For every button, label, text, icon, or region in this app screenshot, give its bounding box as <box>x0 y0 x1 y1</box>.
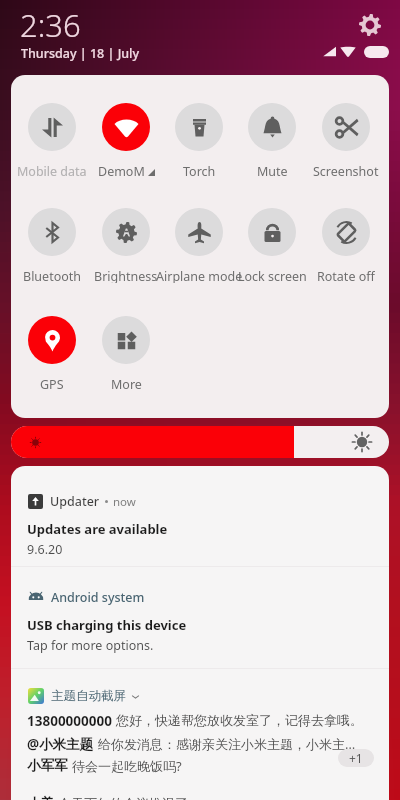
button[interactable]: Airplane mode <box>162 208 236 283</box>
staticText: DemoM <box>98 163 145 178</box>
staticText: 您好，快递帮您放收发室了，记得去拿哦。 <box>116 712 363 728</box>
staticText: 今天下午的会议推迟了 <box>58 795 188 800</box>
staticText: Lock screen <box>238 268 307 283</box>
button[interactable]: Lock screen <box>235 208 309 283</box>
staticText: 小美 <box>27 795 54 800</box>
staticText: Android system <box>51 589 145 606</box>
staticText: Thursday | 18 | July <box>21 45 140 62</box>
button[interactable]: GPS <box>15 316 89 391</box>
button[interactable]: Bluetooth <box>15 208 89 283</box>
staticText: @小米主题 <box>27 735 94 753</box>
staticText: Airplane mode <box>156 268 243 283</box>
button[interactable]: 主题自动截屏 <box>11 669 389 800</box>
staticText: Tap for more options. <box>27 637 154 654</box>
staticText: now <box>113 494 136 510</box>
staticText: 2:36 <box>20 4 81 46</box>
staticText: GPS <box>40 376 64 391</box>
button[interactable]: Torch <box>162 103 236 178</box>
button[interactable]: Settings <box>359 14 381 36</box>
staticText: Mute <box>257 163 288 178</box>
button[interactable]: Android system <box>11 567 389 669</box>
staticText: 主题自动截屏 <box>51 688 126 704</box>
button[interactable]: Rotate off <box>309 208 383 283</box>
staticText: 小军军 <box>27 757 68 774</box>
button[interactable]: +1 <box>338 749 374 767</box>
button[interactable]: DemoM <box>89 103 163 178</box>
staticText: Updates are available <box>27 520 168 538</box>
staticText: 给你发消息：感谢亲关注小米主题，小米主… <box>98 735 356 753</box>
button[interactable]: Brightness <box>11 426 389 458</box>
button[interactable]: Brightness <box>89 208 163 283</box>
staticText: Torch <box>183 163 216 178</box>
staticText: Mobile data <box>17 163 87 178</box>
staticText: Updater <box>50 493 100 510</box>
staticText: USB charging this device <box>27 616 187 634</box>
button[interactable]: More <box>89 316 163 391</box>
button[interactable]: Mobile data <box>15 103 89 178</box>
button[interactable]: Screenshot <box>309 103 383 178</box>
staticText: Bluetooth <box>23 268 82 283</box>
staticText: More <box>111 376 142 391</box>
staticText: Screenshot <box>313 163 379 178</box>
button[interactable]: Updater <box>11 466 389 567</box>
staticText: 9.6.20 <box>27 541 63 558</box>
staticText: 13800000000 <box>27 712 112 730</box>
staticText: +1 <box>349 750 363 766</box>
button[interactable]: Mute <box>235 103 309 178</box>
staticText: Rotate off <box>317 268 375 283</box>
staticText: Brightness <box>94 268 158 283</box>
staticText: 待会一起吃晚饭吗? <box>72 757 182 775</box>
